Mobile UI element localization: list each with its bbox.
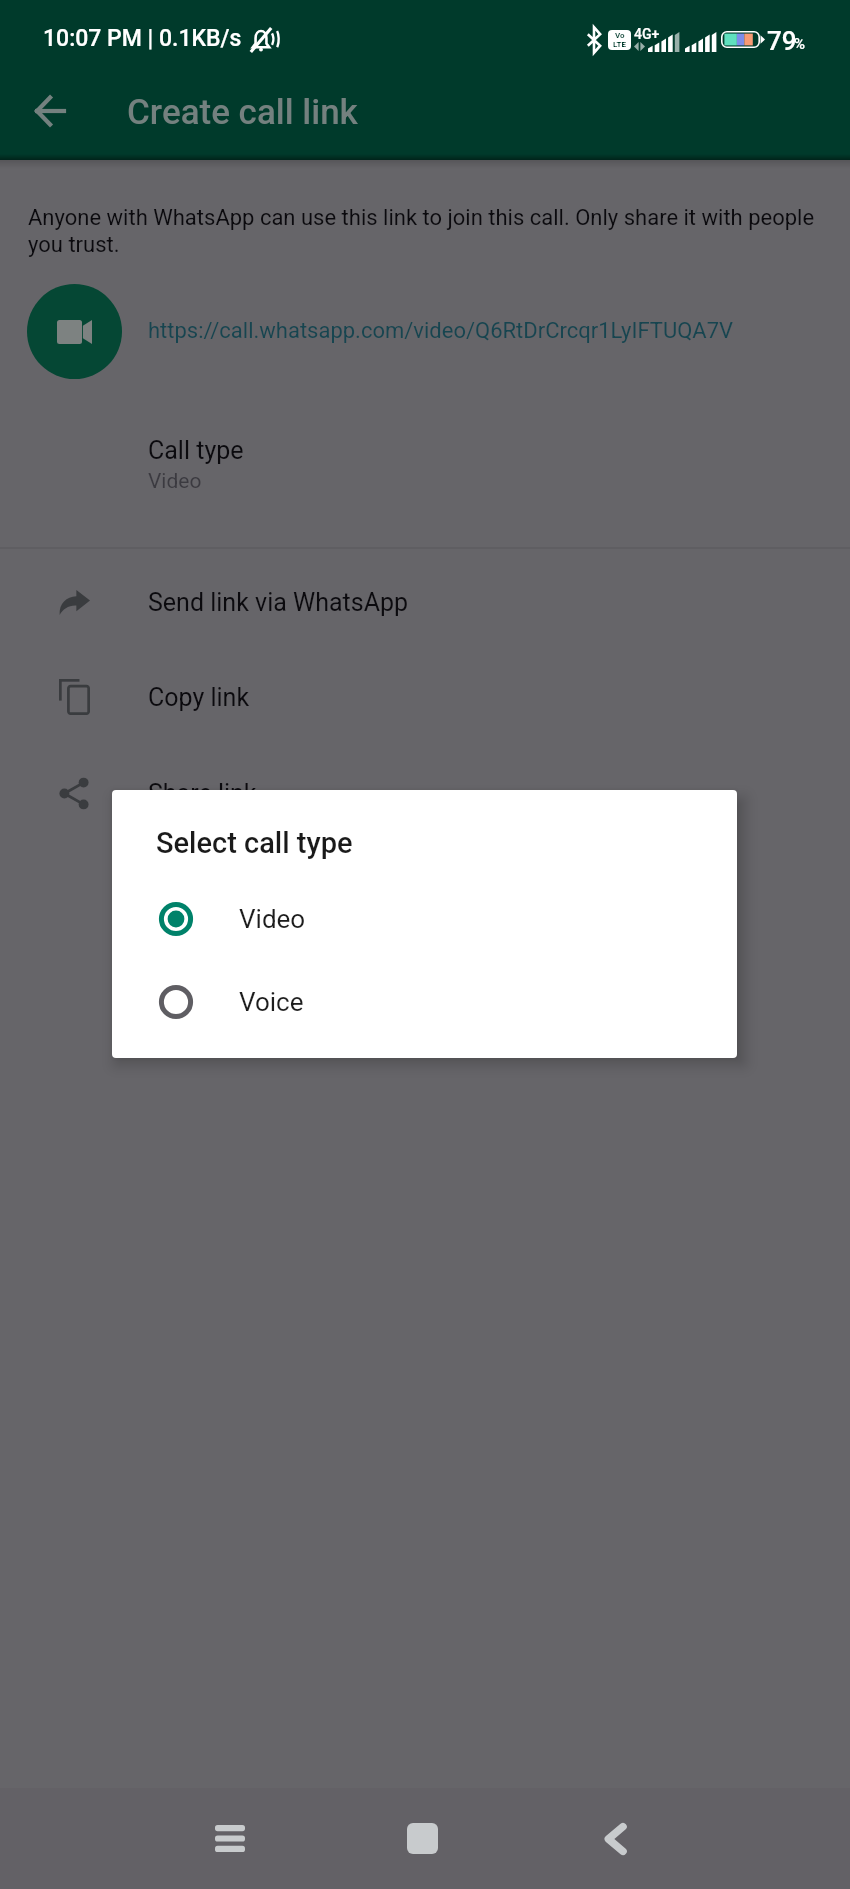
staticText: Video [148,469,202,494]
staticText: 4G+ [634,26,660,42]
button[interactable]: Home [358,1788,486,1889]
staticText: Create call link [127,92,358,133]
staticText: Select call type [156,826,353,860]
button[interactable]: Recents [166,1788,294,1889]
staticText: % [794,35,806,53]
staticText: Video [239,904,306,934]
staticText: 79 [767,26,797,56]
button[interactable]: Send link via WhatsApp [0,554,850,650]
button[interactable]: Back [550,1788,678,1889]
staticText: Share link [148,779,257,808]
staticText: LTE [613,40,626,49]
staticText: Copy link [148,683,250,712]
button[interactable]: Video [112,877,737,960]
staticText: 10:07 PM | 0.1KB/s [43,25,242,52]
button[interactable]: Video call [27,284,122,379]
staticText: Voice [239,987,304,1017]
button[interactable]: Call type [0,414,850,524]
staticText: Vo [615,31,625,40]
button[interactable]: Copy link [0,649,850,745]
button[interactable]: Voice [112,960,737,1043]
button[interactable]: https://call.whatsapp.com/video/Q6RtDrCr… [148,318,734,344]
staticText: Anyone with WhatsApp can use this link t… [28,205,818,257]
staticText: Call type [148,436,244,465]
staticText: Send link via WhatsApp [148,588,409,617]
button[interactable]: Share link [0,745,850,841]
button[interactable]: Back [9,71,89,151]
